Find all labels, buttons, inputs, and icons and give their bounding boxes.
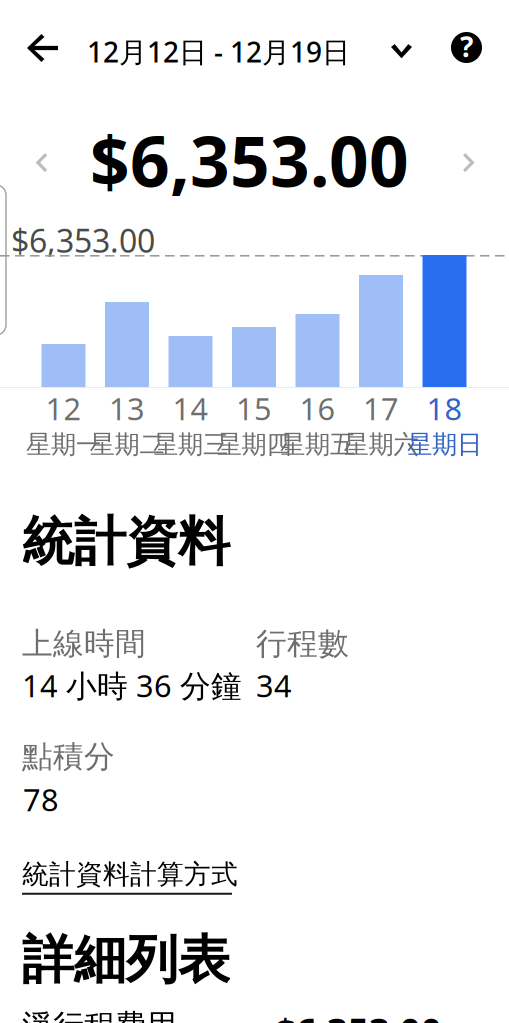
staticText: ? <box>460 28 473 65</box>
staticText: 12月12日 - 12月19日 <box>87 33 350 70</box>
staticText: 上線時間 <box>22 625 146 663</box>
staticText: 18 <box>426 388 462 429</box>
staticText: 15 <box>236 388 272 429</box>
staticText: 12 <box>45 388 81 429</box>
staticText: 淨行程費用 <box>22 1007 177 1023</box>
staticText: $6,353.00 <box>275 1007 442 1023</box>
button[interactable]: 統計資料計算方式 <box>22 858 238 895</box>
staticText: 14 小時 36 分鐘 <box>22 665 242 706</box>
staticText: 星期一 <box>26 429 101 460</box>
staticText: 17 <box>363 388 399 429</box>
button[interactable]: Back <box>14 20 72 76</box>
staticText: 34 <box>256 665 292 706</box>
button[interactable]: Next week <box>448 138 490 187</box>
staticText: 78 <box>23 779 59 820</box>
staticText: 星期二 <box>89 429 164 460</box>
staticText: 14 <box>172 388 208 429</box>
button[interactable]: 12月12日 - 12月19日 <box>87 21 412 82</box>
staticText: $6,353.00 <box>11 219 155 261</box>
button[interactable]: Help <box>437 18 496 77</box>
staticText: 星期六 <box>343 429 418 460</box>
staticText: 星期四 <box>216 429 291 460</box>
staticText: 星期日 <box>407 429 482 460</box>
button[interactable]: Previous week <box>20 138 62 187</box>
staticText: 點積分 <box>22 738 115 776</box>
staticText: 行程數 <box>256 625 349 663</box>
staticText: 統計資料 <box>22 510 230 574</box>
staticText: 統計資料計算方式 <box>22 858 238 891</box>
staticText: 星期五 <box>280 429 355 460</box>
staticText: 星期三 <box>153 429 228 460</box>
staticText: 16 <box>299 388 335 429</box>
staticText: 13 <box>109 388 145 429</box>
staticText: 詳細列表 <box>22 928 230 992</box>
staticText: $6,353.00 <box>90 114 409 206</box>
